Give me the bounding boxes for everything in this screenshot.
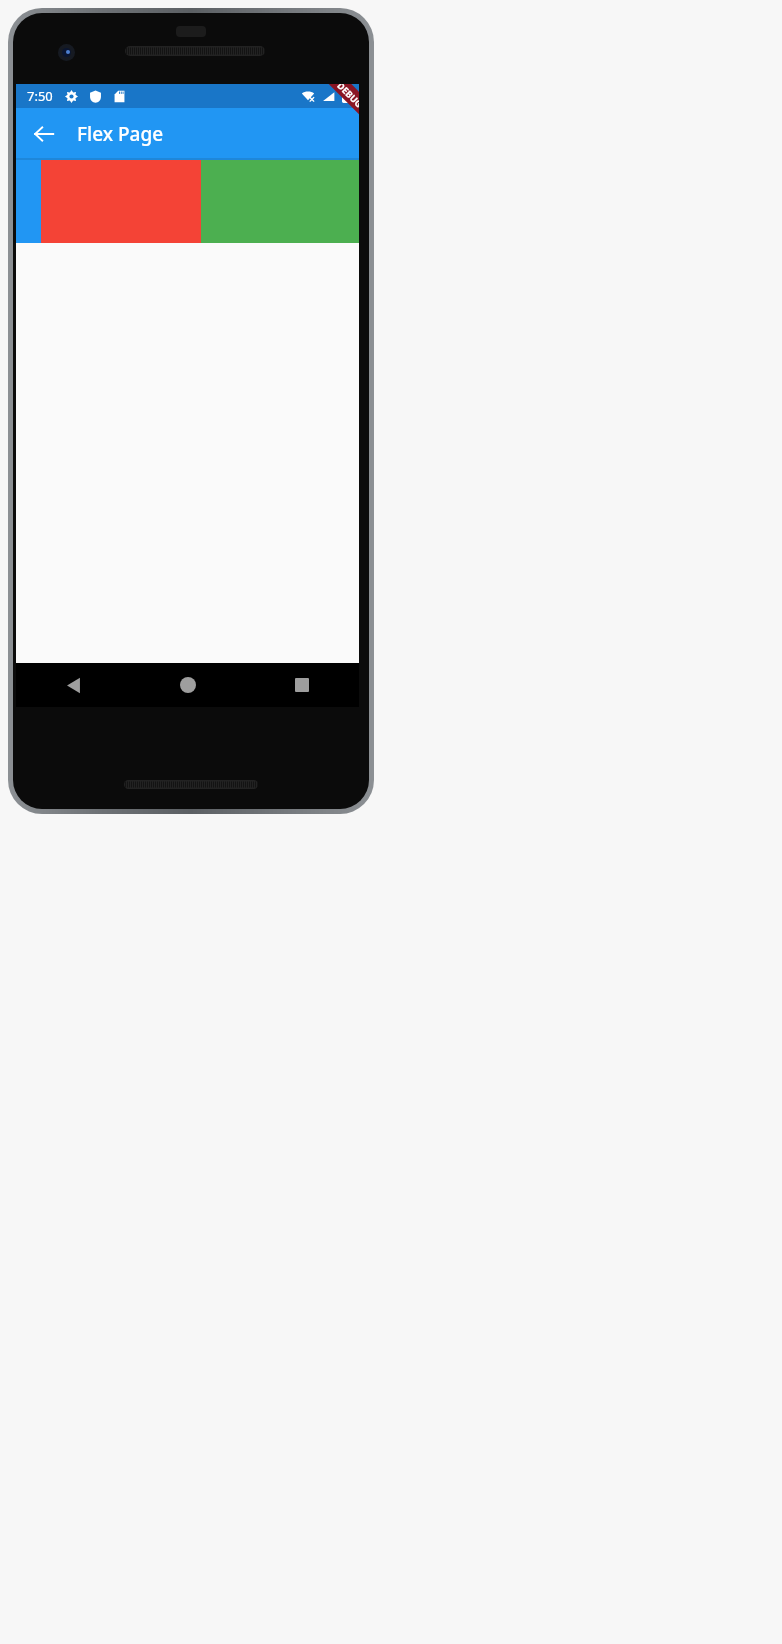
staticText: DEBUG (335, 84, 359, 110)
button[interactable]: Home (131, 663, 245, 707)
staticText: 7:50 (27, 87, 53, 105)
button[interactable]: Back (16, 663, 131, 707)
button[interactable]: Recent apps (245, 663, 359, 707)
button[interactable]: Back (24, 114, 64, 154)
staticText: Flex Page (77, 121, 164, 147)
